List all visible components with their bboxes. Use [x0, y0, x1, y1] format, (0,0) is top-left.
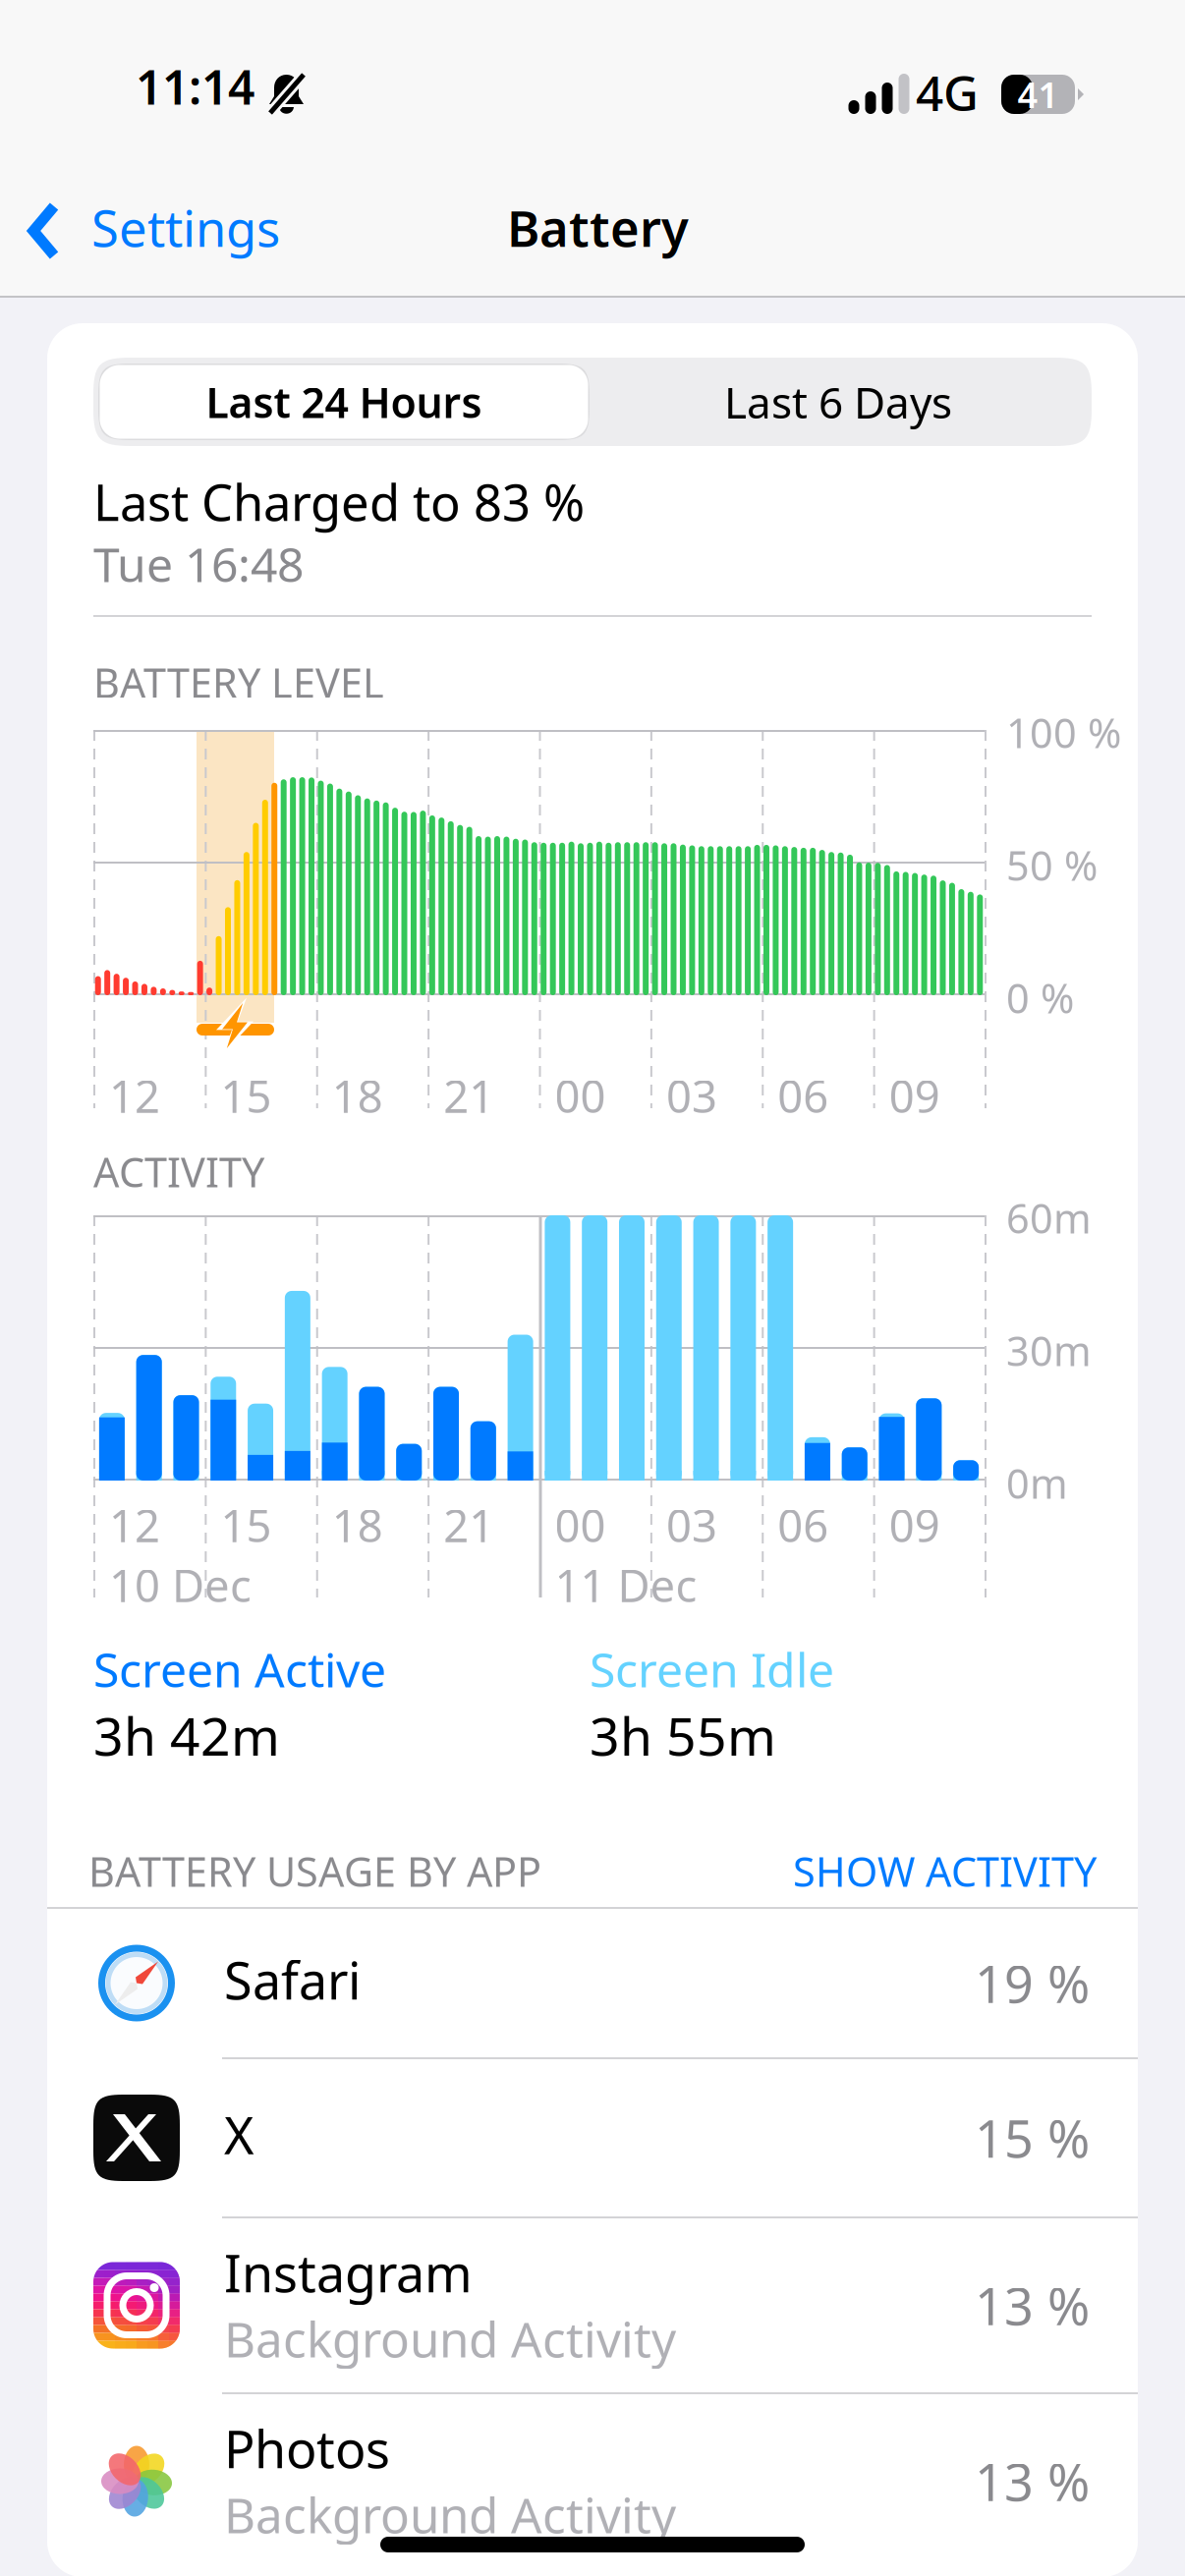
staticText: BATTERY USAGE BY APP — [88, 1844, 541, 1898]
staticText: 15 — [220, 1495, 272, 1554]
button[interactable]: Safari — [47, 1909, 1138, 2057]
staticText: 0m — [1006, 1456, 1068, 1510]
staticText: 09 — [889, 1066, 940, 1125]
button[interactable]: SHOW ACTIVITY — [793, 1844, 1097, 1898]
staticText: Last Charged to 83 % — [93, 469, 585, 535]
staticText: 11:14 — [136, 55, 254, 118]
staticText: 00 — [555, 1066, 606, 1125]
staticText: Battery — [507, 195, 689, 261]
staticText: 3h 55m — [590, 1701, 776, 1770]
staticText: 19 % — [975, 1949, 1090, 2017]
staticText: 15 % — [975, 2104, 1090, 2172]
button[interactable]: Instagram — [47, 2218, 1138, 2392]
staticText: 4G — [916, 60, 979, 124]
staticText: 18 — [332, 1066, 383, 1125]
button[interactable]: Last 6 Days — [590, 364, 1087, 440]
staticText: Last 6 Days — [724, 373, 952, 431]
staticText: Background Activity — [224, 2482, 676, 2547]
staticText: 03 — [666, 1066, 717, 1125]
staticText: 18 — [332, 1495, 383, 1554]
staticText: 12 — [109, 1495, 160, 1554]
staticText: 21 — [443, 1066, 494, 1125]
staticText: 3h 42m — [93, 1701, 280, 1770]
staticText: 21 — [443, 1495, 494, 1554]
staticText: Screen Active — [93, 1638, 386, 1700]
staticText: 03 — [666, 1495, 717, 1554]
button[interactable]: X — [47, 2059, 1138, 2216]
staticText: 13 % — [975, 2447, 1090, 2515]
staticText: 10 Dec — [109, 1555, 252, 1614]
staticText: 100 % — [1006, 705, 1121, 759]
staticText: 60m — [1006, 1191, 1092, 1245]
staticText: 15 — [220, 1066, 272, 1125]
staticText: Photos — [224, 2414, 390, 2482]
button[interactable]: Settings — [0, 180, 295, 296]
staticText: 0 % — [1006, 971, 1074, 1025]
staticText: 06 — [777, 1495, 829, 1554]
button[interactable]: Photos — [47, 2394, 1138, 2568]
staticText: SHOW ACTIVITY — [793, 1844, 1097, 1898]
staticText: Settings — [91, 195, 280, 261]
staticText: 06 — [777, 1066, 829, 1125]
staticText: 30m — [1006, 1323, 1092, 1377]
staticText: 09 — [889, 1495, 940, 1554]
staticText: 11 Dec — [555, 1555, 697, 1614]
staticText: Last 24 Hours — [206, 374, 482, 430]
staticText: ACTIVITY — [93, 1145, 264, 1198]
button[interactable]: Last 24 Hours — [98, 364, 590, 440]
staticText: X — [224, 2100, 254, 2168]
staticText: Safari — [224, 1946, 361, 2014]
staticText: 50 % — [1006, 838, 1098, 892]
staticText: 13 % — [975, 2271, 1090, 2339]
staticText: Background Activity — [224, 2306, 676, 2371]
staticText: 00 — [555, 1495, 606, 1554]
staticText: Instagram — [224, 2239, 473, 2306]
staticText: BATTERY LEVEL — [93, 655, 384, 709]
staticText: Last 24 Hours — [206, 374, 482, 430]
staticText: Screen Idle — [590, 1638, 834, 1700]
staticText: 41 — [1017, 71, 1059, 118]
staticText: Tue 16:48 — [93, 532, 304, 595]
staticText: 12 — [109, 1066, 160, 1125]
